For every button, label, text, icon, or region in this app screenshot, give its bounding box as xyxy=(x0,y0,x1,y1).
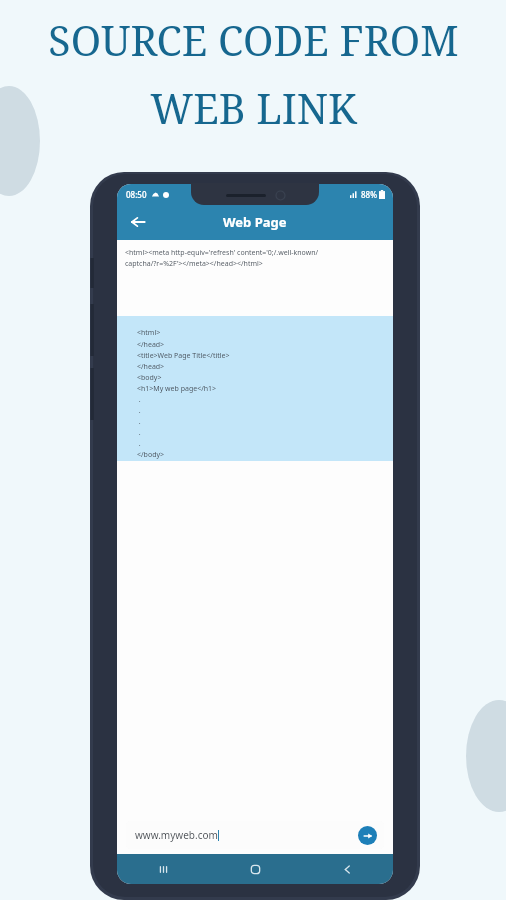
button[interactable]: Recents xyxy=(117,854,209,884)
button[interactable]: Home xyxy=(209,854,301,884)
button[interactable]: Go xyxy=(358,826,377,845)
button[interactable]: Back xyxy=(123,207,153,237)
staticText: Web Page xyxy=(223,213,287,231)
staticText: www.myweb.com xyxy=(135,828,218,842)
staticText: <html> </head> <title>Web Page Title</ti… xyxy=(137,328,230,459)
staticText: WEB LINK xyxy=(150,80,357,136)
staticText: SOURCE CODE FROM xyxy=(48,12,459,68)
button[interactable]: www.myweb.com xyxy=(126,821,384,849)
staticText: 88% xyxy=(361,189,377,200)
button[interactable]: Back xyxy=(301,854,393,884)
staticText: 08:50 xyxy=(126,189,147,200)
staticText: <html><meta http-equiv='refresh' content… xyxy=(125,248,319,268)
